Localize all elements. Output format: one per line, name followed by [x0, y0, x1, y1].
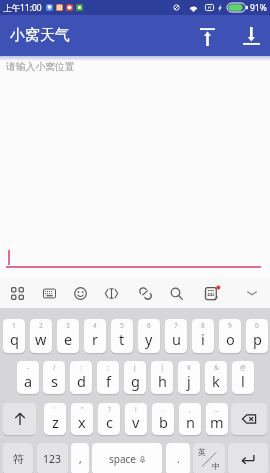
button[interactable]: 4 — [84, 319, 106, 353]
staticText: ' — [54, 405, 56, 414]
button[interactable]: Collapse keyboard — [239, 278, 265, 308]
staticText: 小窝天气 — [10, 26, 70, 45]
button[interactable]: 3 — [57, 319, 79, 353]
button[interactable]: " — [71, 403, 93, 435]
staticText: & — [214, 363, 219, 372]
button[interactable]: 1 — [3, 319, 25, 353]
staticText: 8 — [201, 321, 205, 330]
staticText: c — [106, 412, 113, 432]
staticText: ? — [108, 405, 111, 414]
staticText: x — [78, 412, 86, 432]
staticText: ) — [161, 363, 163, 372]
staticText: , — [79, 452, 82, 466]
staticText: w — [35, 329, 47, 349]
staticText: ! — [135, 405, 137, 414]
staticText: a — [24, 371, 33, 391]
button[interactable]: Text edit — [98, 278, 124, 308]
button[interactable]: 符 — [3, 443, 33, 473]
button[interactable]: Upload — [187, 16, 227, 56]
staticText: / — [53, 363, 56, 372]
button[interactable]: - — [17, 361, 39, 394]
button[interactable]: ) — [151, 361, 173, 394]
button[interactable]: 2 — [30, 319, 52, 353]
button[interactable]: Download — [231, 16, 270, 56]
button[interactable]: @ — [232, 361, 254, 394]
staticText: 1 — [12, 321, 16, 330]
staticText: 3 — [66, 321, 70, 330]
button[interactable]: 6 — [138, 319, 160, 353]
staticText: p — [253, 329, 262, 349]
staticText: ¥ — [187, 363, 191, 372]
staticText: f — [106, 371, 111, 391]
staticText: … — [214, 405, 220, 414]
button[interactable]: ¥ — [178, 361, 200, 394]
staticText: : — [80, 363, 82, 372]
staticText: t — [119, 329, 125, 349]
staticText: b — [159, 412, 168, 432]
staticText: j — [187, 371, 191, 391]
staticText: 4 — [93, 321, 97, 330]
button[interactable]: ? — [98, 403, 120, 435]
button[interactable]: Enter — [228, 443, 268, 473]
button[interactable]: Emoji — [67, 278, 93, 308]
button[interactable]: 0 — [246, 319, 268, 353]
button[interactable]: Attach — [132, 278, 158, 308]
staticText: 9 — [228, 321, 232, 330]
staticText: m — [210, 412, 224, 432]
staticText: . — [162, 405, 164, 414]
staticText: n — [186, 412, 195, 432]
staticText: d — [77, 371, 86, 391]
button[interactable]: ! — [125, 403, 147, 435]
staticText: ; — [107, 363, 109, 372]
button[interactable]: ; — [97, 361, 119, 394]
button[interactable]: / — [43, 361, 65, 394]
button[interactable]: , — [71, 443, 89, 473]
button[interactable]: 5 — [111, 319, 133, 353]
staticText: 123 — [43, 452, 62, 466]
staticText: 5 — [120, 321, 124, 330]
button[interactable]: Keyboard — [36, 278, 62, 308]
staticText: . — [177, 452, 180, 466]
staticText: l — [241, 371, 245, 391]
button[interactable]: Search — [163, 278, 189, 308]
button[interactable]: space — [92, 443, 162, 473]
button[interactable]: ' — [44, 403, 66, 435]
staticText: k — [212, 371, 220, 391]
button[interactable]: 123 — [37, 443, 68, 473]
button[interactable]: 7 — [165, 319, 187, 353]
staticText: space — [109, 452, 136, 466]
staticText: " — [81, 405, 84, 414]
staticText: 91% — [250, 2, 267, 14]
staticText: r — [92, 329, 98, 349]
staticText: @ — [240, 363, 246, 372]
staticText: 符 — [13, 452, 24, 466]
staticText: 6 — [147, 321, 151, 330]
button[interactable]: Shift — [3, 403, 36, 435]
staticText: 中 — [212, 461, 220, 471]
staticText: , — [189, 405, 191, 414]
staticText: g — [131, 371, 140, 391]
button[interactable]: : — [70, 361, 92, 394]
button[interactable]: . — [166, 443, 190, 473]
button[interactable]: Apps — [4, 278, 30, 308]
staticText: z — [52, 412, 59, 432]
button[interactable]: Backspace — [231, 403, 267, 435]
button[interactable]: ( — [124, 361, 146, 394]
staticText: q — [10, 329, 19, 349]
staticText: v — [132, 412, 140, 432]
staticText: i — [201, 329, 205, 349]
button[interactable]: Scan — [199, 278, 225, 308]
button[interactable]: . — [152, 403, 174, 435]
staticText: s — [51, 371, 58, 391]
button[interactable]: & — [205, 361, 227, 394]
staticText: 上午11:00 — [3, 2, 42, 14]
staticText: 0 — [255, 321, 259, 330]
button[interactable]: 8 — [192, 319, 214, 353]
button[interactable]: 9 — [219, 319, 241, 353]
button[interactable]: , — [179, 403, 201, 435]
staticText: h — [158, 371, 167, 391]
staticText: ( — [134, 363, 136, 372]
button[interactable]: Switch language — [193, 443, 225, 473]
button[interactable]: … — [206, 403, 228, 435]
staticText: 英 — [198, 447, 206, 457]
